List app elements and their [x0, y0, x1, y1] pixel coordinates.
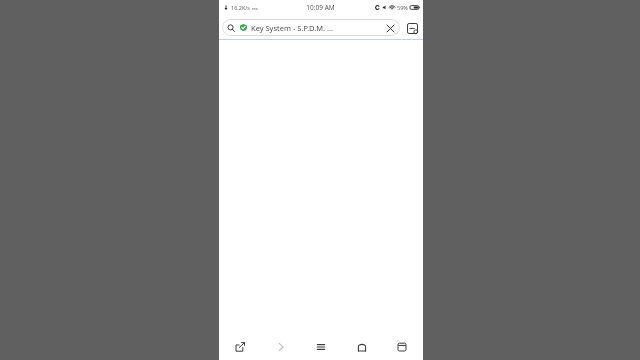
staticText: 10:09 AM	[306, 3, 335, 12]
button[interactable]: Key System - S.P.D.M. ...	[222, 19, 400, 36]
staticText: 16.2K/s	[231, 4, 250, 11]
button[interactable]: Menu	[308, 333, 334, 360]
button[interactable]: Share	[227, 333, 253, 360]
button[interactable]: Stop loading	[385, 23, 395, 33]
staticText: 59%	[397, 4, 408, 11]
staticText: Key System - S.P.D.M. ...	[251, 23, 382, 33]
button[interactable]: Home	[349, 333, 375, 360]
button[interactable]: Forward	[268, 333, 294, 360]
button[interactable]: Tabs	[404, 20, 420, 36]
button[interactable]: Tabs	[389, 333, 415, 360]
